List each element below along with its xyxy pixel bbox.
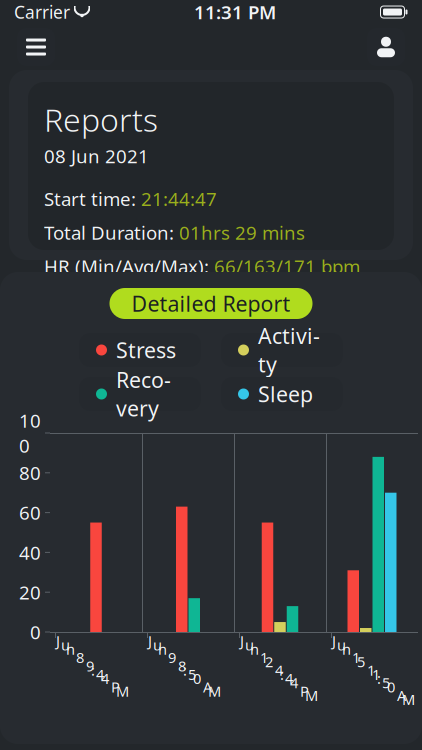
staticText: M: [208, 681, 221, 701]
staticText: [106, 673, 110, 692]
staticText: J: [332, 631, 336, 650]
staticText: u: [337, 635, 346, 655]
staticText: Stress: [116, 336, 176, 364]
staticText: 4: [285, 669, 293, 688]
staticText: :: [91, 660, 95, 680]
staticText: P: [300, 681, 309, 701]
staticText: :: [183, 660, 187, 680]
staticText: 40: [19, 540, 41, 565]
staticText: u: [245, 635, 254, 655]
staticText: 80: [19, 460, 41, 485]
staticText: 5: [382, 673, 390, 692]
staticText: u: [61, 635, 70, 655]
staticText: Start time:: [44, 186, 136, 211]
staticText: 8: [76, 648, 84, 667]
button[interactable]: Detailed Report: [109, 288, 312, 319]
staticText: M: [116, 681, 129, 701]
staticText: n: [158, 639, 167, 659]
button[interactable]: Profile: [367, 28, 405, 66]
staticText: Recovery: [116, 366, 171, 422]
staticText: [295, 677, 299, 697]
staticText: 8: [178, 656, 186, 676]
staticText: J: [56, 631, 60, 650]
staticText: 1: [367, 660, 375, 680]
staticText: [362, 656, 366, 676]
staticText: 4: [290, 673, 298, 692]
staticText: J: [240, 631, 244, 650]
staticText: J: [148, 631, 152, 650]
staticText: n: [250, 639, 259, 659]
staticText: 100: [19, 408, 41, 458]
staticText: M: [402, 690, 415, 709]
staticText: 0: [387, 677, 395, 697]
staticText: 4: [96, 664, 104, 684]
staticText: n: [66, 639, 75, 659]
staticText: [81, 652, 85, 671]
staticText: :: [377, 669, 381, 688]
button[interactable]: Menu: [17, 28, 55, 66]
button[interactable]: Stress: [79, 333, 201, 367]
staticText: [163, 643, 167, 663]
staticText: 60: [19, 500, 41, 525]
staticText: Reports: [44, 98, 158, 140]
button[interactable]: Recovery: [79, 377, 201, 411]
staticText: u: [153, 635, 162, 655]
staticText: 9: [86, 656, 94, 676]
staticText: [347, 643, 351, 663]
staticText: P: [111, 677, 120, 697]
staticText: 1: [352, 648, 360, 667]
staticText: Carrier: [14, 0, 70, 23]
staticText: Total Duration:: [44, 220, 174, 245]
staticText: A: [203, 677, 212, 697]
staticText: 4: [101, 669, 109, 688]
staticText: :: [280, 664, 284, 684]
staticText: [392, 681, 396, 701]
staticText: 0: [30, 620, 41, 644]
staticText: Activity: [258, 322, 320, 378]
staticText: 20: [19, 580, 41, 605]
staticText: Sleep: [258, 380, 313, 408]
staticText: HR (Min/Avg/Max):: [44, 254, 209, 279]
staticText: 21:44:47: [141, 186, 217, 211]
button[interactable]: Activity: [221, 333, 343, 367]
staticText: [255, 643, 259, 663]
staticText: 01hrs 29 mins: [179, 220, 305, 245]
staticText: 5: [188, 664, 196, 684]
staticText: 9: [168, 648, 176, 667]
staticText: n: [342, 639, 351, 659]
staticText: 2: [265, 652, 273, 671]
staticText: A: [397, 685, 406, 705]
staticText: [198, 673, 202, 692]
staticText: M: [305, 685, 318, 705]
staticText: [71, 643, 75, 663]
staticText: 11:31 PM: [194, 0, 276, 24]
staticText: 0: [193, 669, 201, 688]
staticText: 1: [372, 664, 380, 684]
staticText: 08 Jun 2021: [44, 143, 149, 168]
staticText: 66/163/171 bpm: [214, 254, 360, 279]
staticText: 1: [260, 648, 268, 667]
staticText: 4: [275, 660, 283, 680]
staticText: Detailed Report: [131, 289, 290, 318]
staticText: [270, 656, 274, 676]
staticText: [173, 652, 177, 671]
staticText: 5: [357, 652, 365, 671]
button[interactable]: Sleep: [221, 377, 343, 411]
